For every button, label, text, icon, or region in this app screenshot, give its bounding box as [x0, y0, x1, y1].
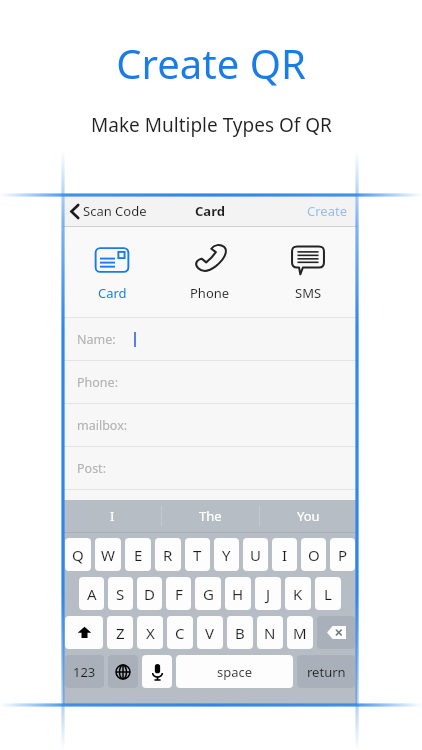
- button[interactable]: G: [195, 577, 221, 610]
- button[interactable]: F: [166, 577, 191, 610]
- staticText: Make Multiple Types Of QR: [91, 112, 332, 138]
- button[interactable]: P: [330, 538, 355, 571]
- staticText: R: [163, 545, 173, 565]
- button[interactable]: 123: [65, 655, 104, 688]
- staticText: SMS: [295, 284, 322, 302]
- button[interactable]: Post:: [63, 447, 357, 489]
- button[interactable]: A: [79, 577, 104, 610]
- staticText: N: [264, 623, 276, 643]
- staticText: T: [193, 545, 202, 565]
- button[interactable]: D: [137, 577, 162, 610]
- button[interactable]: O: [301, 538, 326, 571]
- staticText: space: [217, 663, 253, 681]
- staticText: O: [308, 545, 320, 565]
- button[interactable]: Backspace: [317, 616, 355, 649]
- staticText: A: [87, 584, 97, 604]
- staticText: E: [134, 545, 143, 565]
- button[interactable]: M: [287, 616, 313, 649]
- button[interactable]: W: [95, 538, 121, 571]
- button[interactable]: Card: [63, 227, 161, 317]
- staticText: Name:: [77, 331, 116, 348]
- button[interactable]: Name:: [63, 318, 357, 360]
- staticText: Y: [222, 545, 231, 565]
- button[interactable]: R: [155, 538, 181, 571]
- staticText: You: [297, 507, 320, 525]
- button[interactable]: Z: [107, 616, 133, 649]
- button[interactable]: K: [285, 577, 311, 610]
- staticText: mailbox:: [77, 417, 128, 434]
- button[interactable]: B: [227, 616, 253, 649]
- button[interactable]: C: [167, 616, 193, 649]
- button[interactable]: The: [162, 500, 259, 532]
- button[interactable]: N: [257, 616, 283, 649]
- button[interactable]: Scan Code: [63, 197, 157, 225]
- staticText: M: [293, 623, 307, 643]
- staticText: The: [199, 507, 222, 525]
- staticText: I: [110, 507, 115, 525]
- staticText: 123: [73, 663, 96, 681]
- staticText: F: [175, 584, 183, 604]
- staticText: X: [146, 623, 155, 643]
- button[interactable]: V: [197, 616, 223, 649]
- staticText: K: [293, 584, 303, 604]
- button[interactable]: X: [137, 616, 163, 649]
- staticText: Post:: [77, 460, 106, 477]
- button[interactable]: J: [255, 577, 281, 610]
- staticText: Scan Code: [83, 202, 147, 220]
- staticText: G: [203, 584, 214, 604]
- staticText: U: [250, 545, 261, 565]
- button[interactable]: I: [272, 538, 297, 571]
- staticText: V: [205, 623, 215, 643]
- button[interactable]: T: [185, 538, 210, 571]
- staticText: S: [116, 584, 125, 604]
- staticText: Create QR: [116, 36, 306, 90]
- staticText: Phone: [190, 284, 230, 302]
- staticText: Z: [116, 623, 125, 643]
- staticText: W: [101, 545, 115, 565]
- button[interactable]: Dictation: [142, 655, 172, 688]
- button[interactable]: mailbox:: [63, 404, 357, 446]
- button[interactable]: Y: [214, 538, 239, 571]
- button[interactable]: E: [125, 538, 151, 571]
- staticText: L: [324, 584, 332, 604]
- button[interactable]: U: [243, 538, 268, 571]
- button[interactable]: Shift: [65, 616, 103, 649]
- staticText: J: [266, 584, 271, 604]
- staticText: P: [338, 545, 348, 565]
- button[interactable]: You: [260, 500, 357, 532]
- staticText: return: [307, 663, 346, 681]
- button[interactable]: space: [176, 655, 293, 688]
- staticText: Phone:: [77, 374, 118, 391]
- button[interactable]: Create: [297, 196, 357, 226]
- button[interactable]: Q: [65, 538, 91, 571]
- button[interactable]: Phone: [161, 227, 259, 317]
- button[interactable]: L: [315, 577, 341, 610]
- button[interactable]: H: [225, 577, 251, 610]
- button[interactable]: I: [63, 500, 161, 532]
- staticText: D: [144, 584, 155, 604]
- button[interactable]: Change keyboard: [108, 655, 138, 688]
- staticText: Card: [195, 202, 225, 220]
- staticText: B: [235, 623, 245, 643]
- button[interactable]: SMS: [259, 227, 357, 317]
- button[interactable]: S: [108, 577, 133, 610]
- staticText: Card: [98, 284, 127, 302]
- staticText: I: [282, 545, 288, 565]
- staticText: Q: [72, 545, 84, 565]
- button[interactable]: return: [297, 655, 355, 688]
- staticText: C: [175, 623, 185, 643]
- staticText: H: [232, 584, 244, 604]
- button[interactable]: Phone:: [63, 361, 357, 403]
